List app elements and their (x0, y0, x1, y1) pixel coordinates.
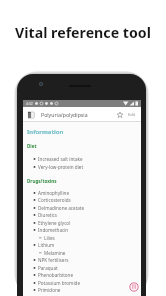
staticText: Vital reference tool (0, 23, 166, 42)
button[interactable]: Lithium (33, 241, 55, 248)
button[interactable]: Lilies (39, 234, 55, 241)
button[interactable]: NPK fertilisers (33, 256, 69, 263)
button[interactable]: Potassium bromide (33, 279, 81, 286)
button[interactable]: Edit (128, 112, 136, 118)
staticText: Aminophylline (38, 190, 70, 196)
staticText: Indomethacin (38, 227, 69, 233)
other: Publisher logo (129, 282, 139, 292)
button[interactable]: Primidone (33, 286, 61, 293)
staticText: Delmadinone acetate (38, 205, 85, 211)
staticText: Paraquat (38, 265, 58, 271)
button[interactable]: Indomethacin (33, 226, 69, 233)
button[interactable]: Favourite (117, 112, 123, 118)
button[interactable]: Very-low-protein diet (33, 163, 84, 170)
button[interactable]: Phenobarbitone (33, 271, 74, 278)
button[interactable]: Delmadinone acetate (33, 204, 85, 211)
button[interactable]: Increased salt intake (33, 155, 83, 162)
staticText: 4:32 (26, 101, 33, 106)
button[interactable]: Diuretics (33, 211, 58, 218)
button[interactable]: Corticosteroids (33, 196, 71, 203)
staticText: Polyuria/polydipsia (41, 111, 88, 118)
staticText: Phenobarbitone (38, 272, 74, 278)
staticText: Diet (27, 143, 37, 149)
button[interactable]: Open book (27, 111, 35, 119)
staticText: Lithium (38, 242, 55, 248)
staticText: Melamine (44, 250, 66, 256)
staticText: Ethylene glycol (38, 220, 71, 226)
staticText: Increased salt intake (38, 156, 83, 162)
staticText: Very-low-protein diet (38, 164, 84, 170)
staticText: Potassium bromide (38, 280, 81, 286)
button[interactable]: Aminophylline (33, 189, 70, 196)
staticText: Drugs/toxins (27, 178, 57, 184)
staticText: Information (27, 128, 64, 136)
button[interactable]: Ethylene glycol (33, 219, 71, 226)
staticText: Lilies (44, 235, 55, 241)
staticText: NPK fertilisers (38, 257, 69, 263)
staticText: Edit (128, 112, 136, 118)
button[interactable]: Melamine (39, 249, 66, 256)
staticText: Diuretics (38, 212, 58, 218)
button[interactable]: Paraquat (33, 264, 58, 271)
staticText: Corticosteroids (38, 197, 71, 203)
staticText: Primidone (38, 287, 61, 293)
